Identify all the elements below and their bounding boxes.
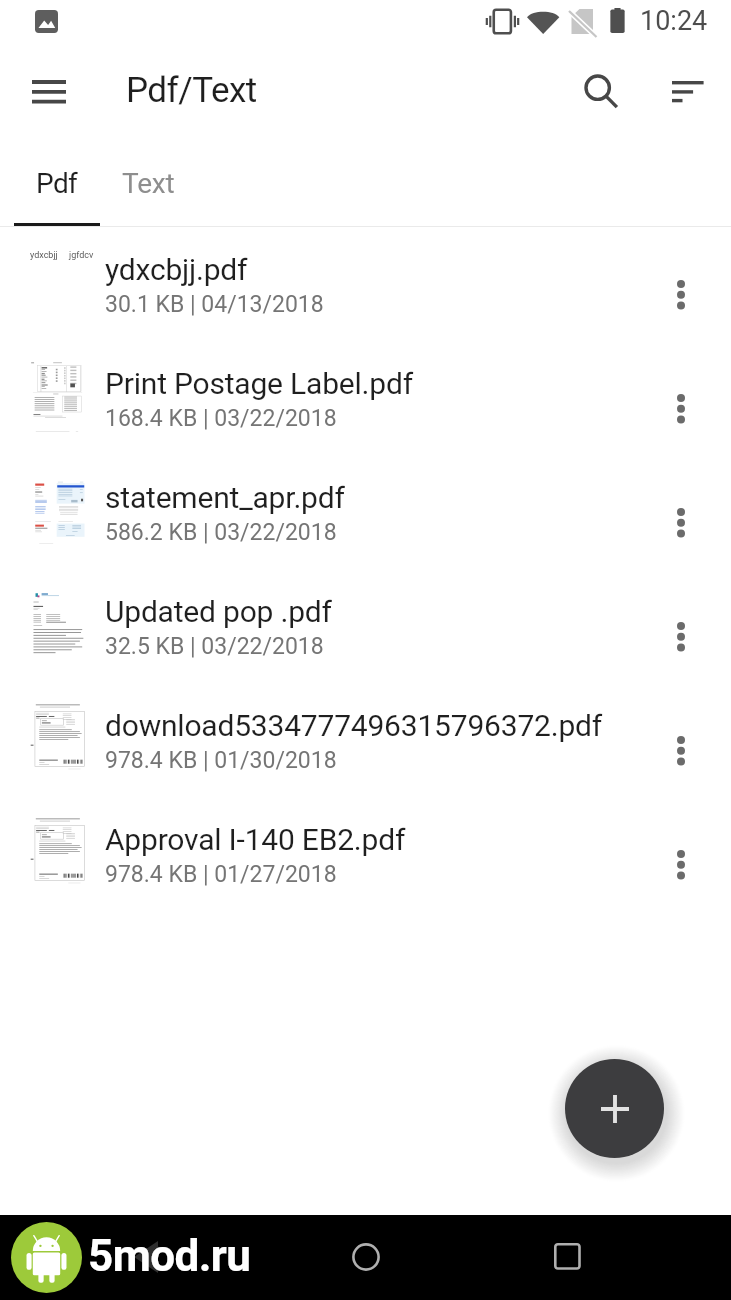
staticText: 32.5 KB | 03/22/2018 [105, 633, 324, 660]
button[interactable]: Add [565, 1059, 664, 1158]
button[interactable]: More options [645, 590, 717, 662]
button[interactable]: More options [645, 704, 717, 776]
button[interactable]: Pdf [14, 140, 100, 225]
button[interactable]: Navigation menu [6, 55, 66, 115]
staticText: ydxcbjj [30, 250, 58, 261]
button[interactable]: More options [645, 818, 717, 890]
button[interactable]: Sort [648, 59, 720, 131]
staticText: 978.4 KB | 01/30/2018 [105, 747, 337, 774]
staticText: 10:24 [640, 5, 708, 37]
button[interactable]: Home [334, 1225, 398, 1289]
staticText: Text [122, 167, 175, 200]
staticText: statement_apr.pdf [105, 480, 345, 515]
staticText: 978.4 KB | 01/27/2018 [105, 861, 337, 888]
staticText: 30.1 KB | 04/13/2018 [105, 291, 324, 318]
button[interactable]: statement_apr.pdf [0, 455, 731, 569]
button[interactable]: Approval I-140 EB2.pdf [0, 797, 731, 911]
button[interactable]: ydxcbjj [0, 227, 731, 341]
button[interactable]: More options [645, 248, 717, 320]
button[interactable]: Text [104, 140, 192, 225]
staticText: Updated pop .pdf [105, 594, 332, 629]
staticText: Pdf [36, 167, 78, 200]
button[interactable]: More options [645, 362, 717, 434]
button[interactable]: Updated pop .pdf [0, 569, 731, 683]
button[interactable]: Search [562, 59, 634, 131]
staticText: jgfdcv [69, 250, 94, 261]
button[interactable]: download5334777496315796372.pdf [0, 683, 731, 797]
staticText: 5mod.ru [88, 1230, 251, 1282]
button[interactable]: Print Postage Label.pdf [0, 341, 731, 455]
button[interactable]: More options [645, 476, 717, 548]
button[interactable]: Recent apps [536, 1225, 600, 1289]
staticText: download5334777496315796372.pdf [105, 708, 603, 743]
staticText: Print Postage Label.pdf [105, 366, 413, 401]
staticText: Pdf/Text [126, 70, 257, 111]
staticText: 168.4 KB | 03/22/2018 [105, 405, 337, 432]
staticText: 586.2 KB | 03/22/2018 [105, 519, 337, 546]
staticText: ydxcbjj.pdf [105, 252, 248, 287]
staticText: Approval I-140 EB2.pdf [105, 822, 406, 857]
